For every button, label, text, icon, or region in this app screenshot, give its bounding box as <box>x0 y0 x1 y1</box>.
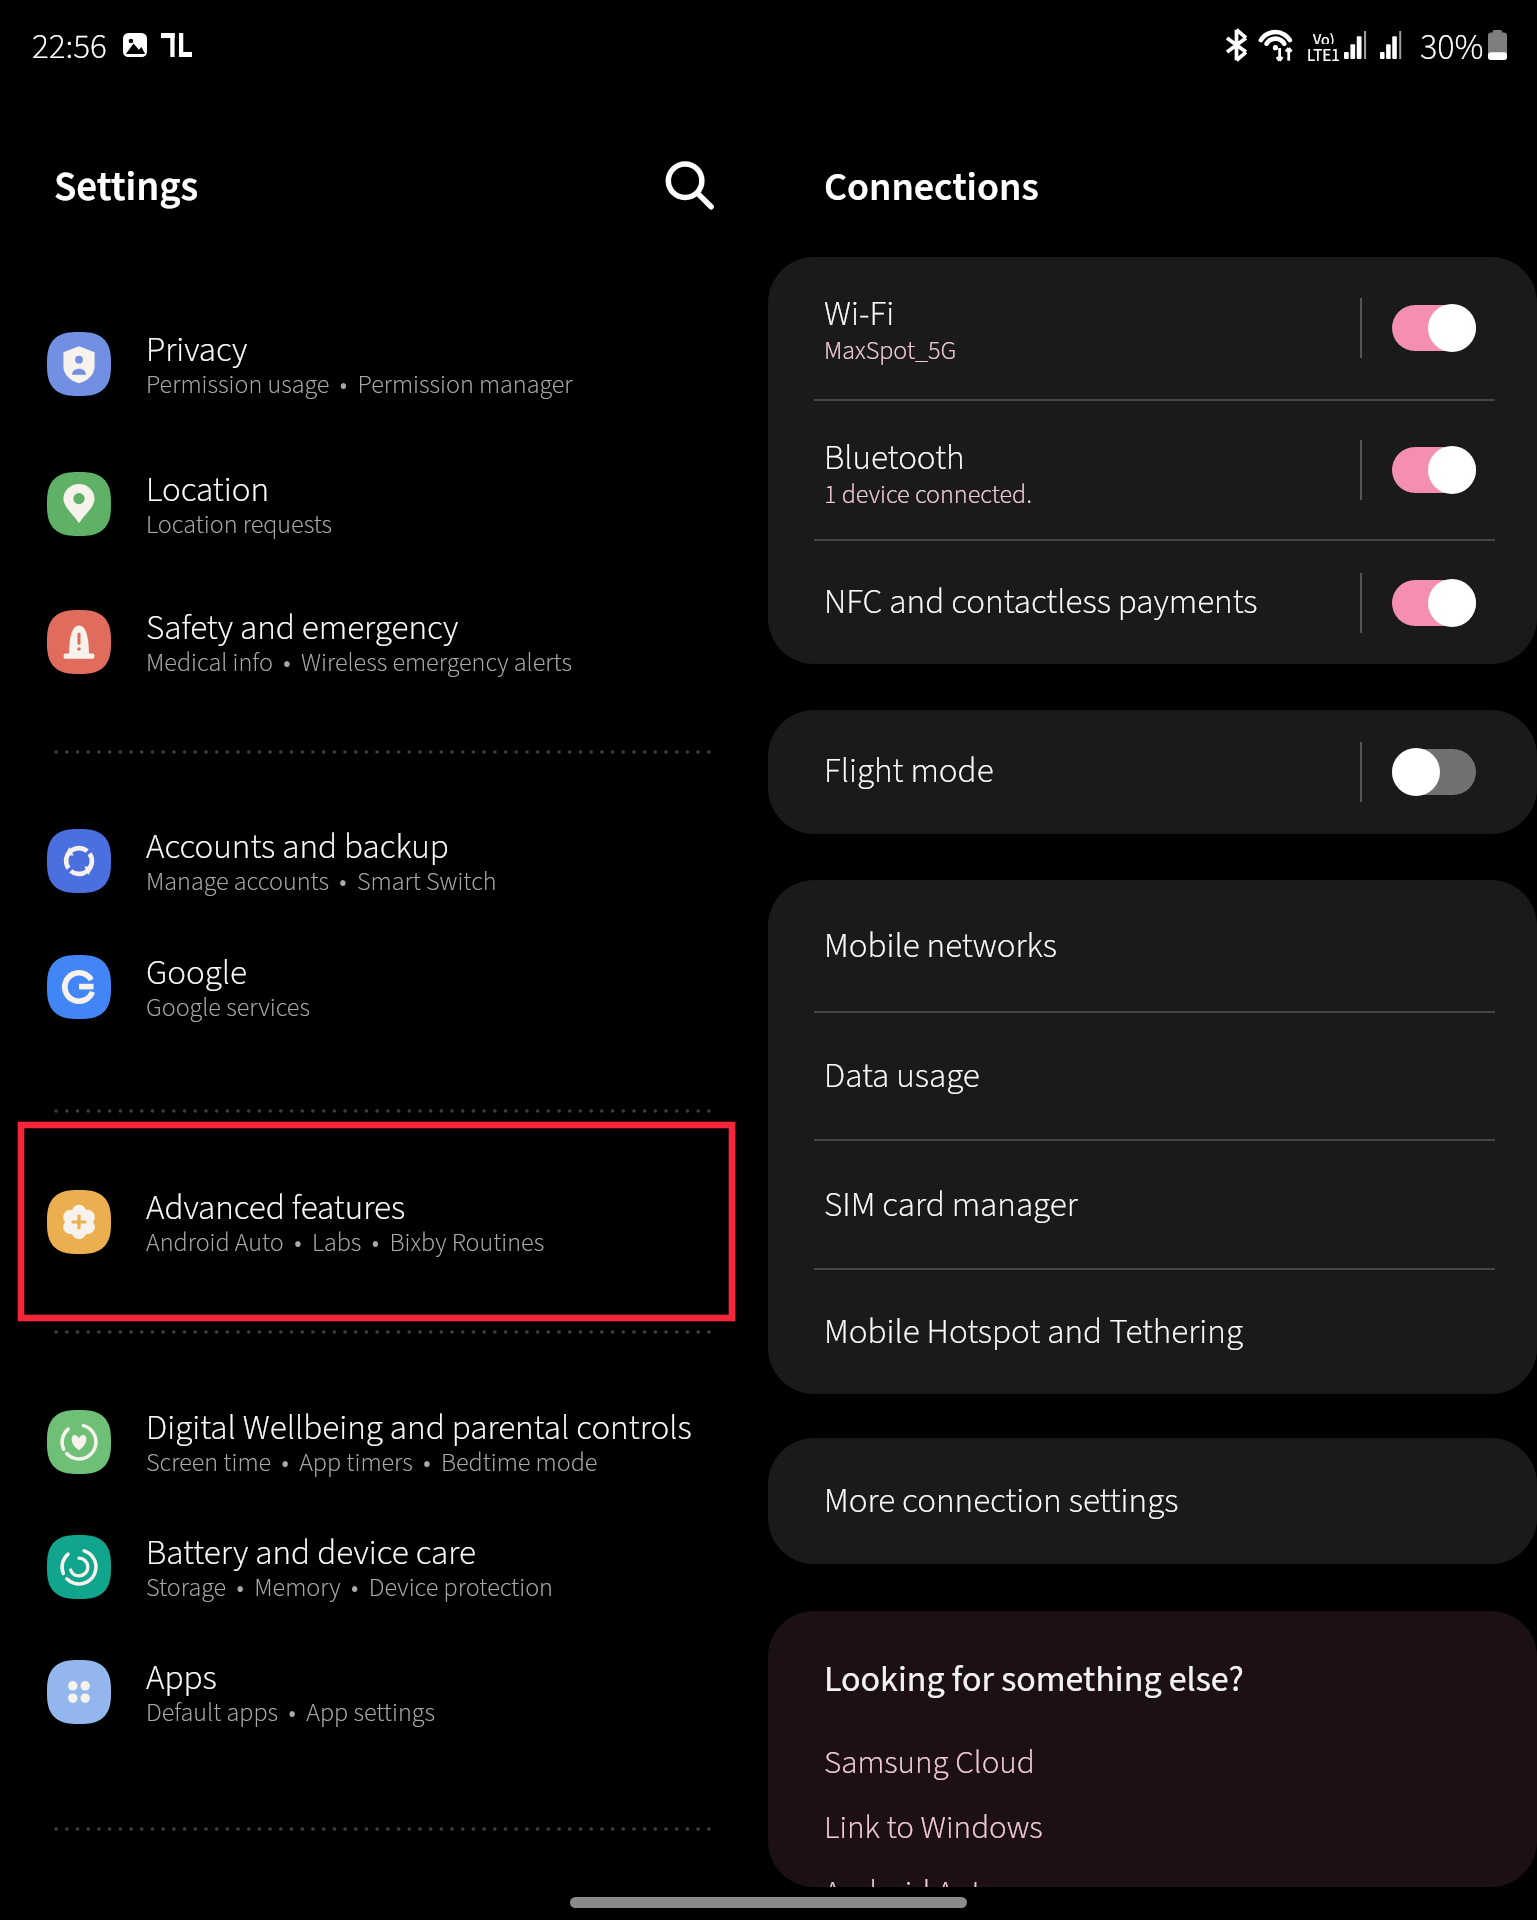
staticText: Link to Windows <box>824 1804 1043 1851</box>
staticText: Manage accounts • Smart Switch <box>146 863 497 900</box>
button[interactable]: Flight mode <box>768 710 1537 834</box>
staticText: Bluetooth <box>824 433 965 483</box>
button[interactable]: Apps <box>0 1630 768 1754</box>
staticText: Storage • Memory • Device protection <box>146 1569 553 1606</box>
button[interactable]: Location <box>0 442 768 566</box>
button[interactable]: Privacy <box>0 302 768 426</box>
staticText: Samsung Cloud <box>824 1739 1035 1786</box>
button[interactable]: Mobile Hotspot and Tethering <box>768 1270 1537 1394</box>
staticText: Apps <box>146 1653 217 1703</box>
staticText: Advanced features <box>146 1183 406 1233</box>
staticText: Data usage <box>824 1051 980 1101</box>
staticText: Wi-Fi <box>824 289 895 339</box>
button[interactable]: More connection settings <box>768 1438 1537 1564</box>
button[interactable]: Search <box>650 148 728 226</box>
staticText: Privacy <box>146 325 248 375</box>
staticText: NFC and contactless payments <box>824 577 1258 627</box>
button[interactable]: SIM card manager <box>768 1141 1537 1268</box>
staticText: 22:56 <box>32 22 107 68</box>
button[interactable]: Accounts and backup <box>0 799 768 923</box>
staticText: Location <box>146 465 270 515</box>
button[interactable]: Toggle <box>1392 303 1482 353</box>
staticText: Digital Wellbeing and parental controls <box>146 1403 692 1453</box>
staticText: Connections <box>824 159 1039 216</box>
staticText: Google <box>146 948 247 998</box>
staticText: Android Auto <box>824 1869 999 1887</box>
staticText: Default apps • App settings <box>146 1694 435 1731</box>
button[interactable]: Digital Wellbeing and parental controls <box>0 1380 768 1504</box>
staticText: Looking for something else? <box>824 1654 1244 1705</box>
staticText: Permission usage • Permission manager <box>146 366 573 403</box>
staticText: Vo) <box>1313 29 1335 44</box>
button[interactable]: Toggle <box>1392 578 1482 628</box>
staticText: Accounts and backup <box>146 822 449 872</box>
staticText: Safety and emergency <box>146 603 459 653</box>
button[interactable]: Mobile networks <box>768 880 1537 1011</box>
staticText: Mobile networks <box>824 921 1057 971</box>
staticText: Settings <box>54 158 199 216</box>
button[interactable]: Wi-Fi <box>768 257 1537 399</box>
staticText: 30% <box>1420 22 1484 68</box>
staticText: Battery and device care <box>146 1528 476 1578</box>
button[interactable]: Bluetooth <box>768 401 1537 539</box>
staticText: Mobile Hotspot and Tethering <box>824 1307 1244 1357</box>
button[interactable]: NFC and contactless payments <box>768 541 1537 664</box>
staticText: Google services <box>146 989 310 1026</box>
staticText: SIM card manager <box>824 1180 1078 1230</box>
button[interactable]: Google <box>0 925 768 1049</box>
button[interactable]: Safety and emergency <box>0 580 768 704</box>
staticText: Flight mode <box>824 746 994 796</box>
staticText: Medical info • Wireless emergency alerts <box>146 644 572 681</box>
staticText: Location requests <box>146 506 333 543</box>
staticText: 1 device connected. <box>824 476 1032 513</box>
staticText: Android Auto • Labs • Bixby Routines <box>146 1224 545 1261</box>
staticText: Screen time • App timers • Bedtime mode <box>146 1444 598 1481</box>
button[interactable]: Advanced features <box>0 1160 768 1284</box>
staticText: More connection settings <box>824 1476 1179 1526</box>
button[interactable]: Toggle <box>1392 445 1482 495</box>
button[interactable]: Toggle <box>1392 747 1482 797</box>
staticText: LTE1 <box>1307 44 1340 61</box>
staticText: MaxSpot_5G <box>824 332 957 369</box>
button[interactable]: Data usage <box>768 1013 1537 1139</box>
button[interactable]: Battery and device care <box>0 1505 768 1629</box>
